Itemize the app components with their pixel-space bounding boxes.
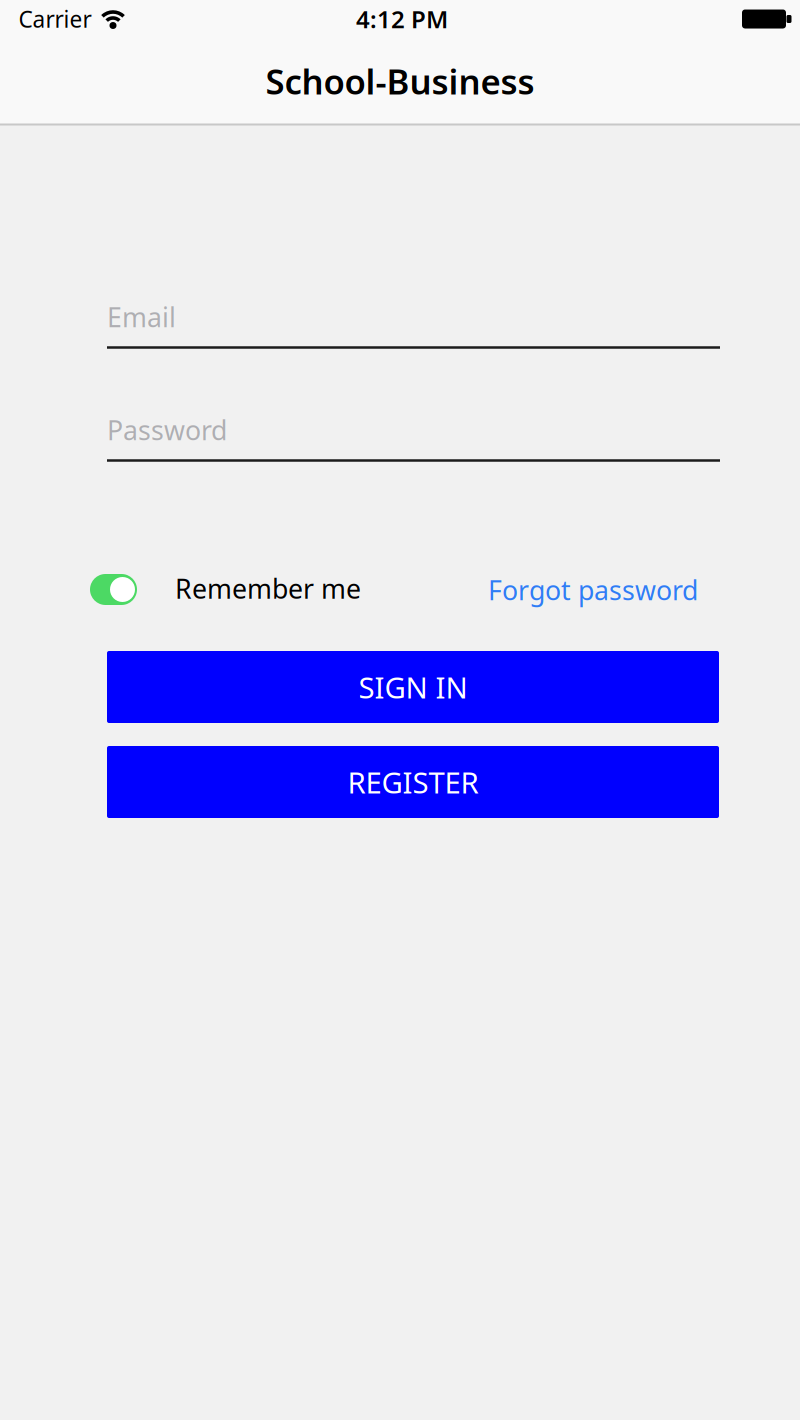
staticText: REGISTER bbox=[347, 762, 478, 801]
staticText: Carrier bbox=[18, 4, 91, 34]
staticText: Remember me bbox=[175, 571, 361, 606]
staticText: 4:12 PM bbox=[356, 3, 448, 35]
button[interactable]: Password bbox=[107, 400, 720, 462]
button[interactable]: Remember me bbox=[87, 567, 457, 612]
button[interactable]: SIGN IN bbox=[107, 651, 719, 723]
button[interactable]: Email bbox=[107, 287, 720, 349]
staticText: Password bbox=[107, 412, 227, 448]
staticText: Email bbox=[107, 299, 176, 335]
button[interactable]: REGISTER bbox=[107, 746, 719, 818]
staticText: Forgot password bbox=[488, 572, 698, 608]
button[interactable]: Forgot password bbox=[488, 572, 698, 608]
staticText: School-Business bbox=[265, 58, 534, 104]
staticText: SIGN IN bbox=[358, 667, 467, 706]
